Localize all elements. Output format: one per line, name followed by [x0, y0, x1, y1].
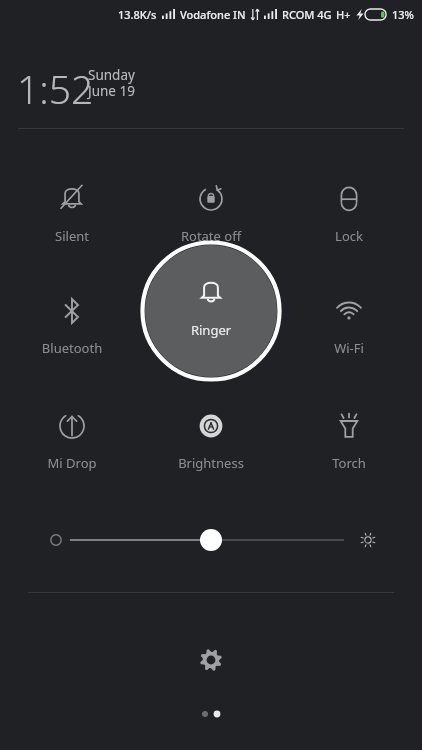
button[interactable]: Ringer [139, 239, 283, 383]
staticText: Mi Drop [7, 454, 137, 472]
staticText: 1:52 [17, 62, 94, 115]
button[interactable]: Mi Drop [7, 396, 137, 488]
staticText: 13.8K/s [118, 7, 157, 22]
button[interactable]: Bluetooth [7, 281, 137, 373]
staticText: RCOM 4G [282, 7, 332, 22]
staticText: Brightness [146, 454, 276, 472]
button[interactable]: Torch [284, 396, 414, 488]
button[interactable]: Settings [187, 636, 235, 684]
button[interactable]: Mobile data [146, 281, 276, 373]
staticText: Lock [284, 227, 414, 245]
staticText: H+ [336, 7, 351, 22]
staticText: Rotate off [146, 227, 276, 245]
staticText: Vodafone IN [180, 7, 246, 22]
button[interactable]: Rotate off [146, 169, 276, 261]
staticText: Silent [7, 227, 137, 245]
button[interactable]: Wi-Fi [284, 281, 414, 373]
staticText: Ringer [139, 321, 283, 339]
button[interactable]: Page indicator [187, 704, 235, 724]
staticText: Mobile data [146, 339, 276, 357]
button[interactable]: Silent [7, 169, 137, 261]
button[interactable]: Brightness slider [30, 518, 392, 562]
staticText: Sunday [88, 66, 135, 84]
button[interactable]: Lock [284, 169, 414, 261]
staticText: June 19 [88, 82, 135, 100]
staticText: 13% [392, 7, 414, 22]
staticText: Bluetooth [7, 339, 137, 357]
button[interactable]: Brightness [146, 396, 276, 488]
staticText: Torch [284, 454, 414, 472]
staticText: Wi-Fi [284, 339, 414, 357]
